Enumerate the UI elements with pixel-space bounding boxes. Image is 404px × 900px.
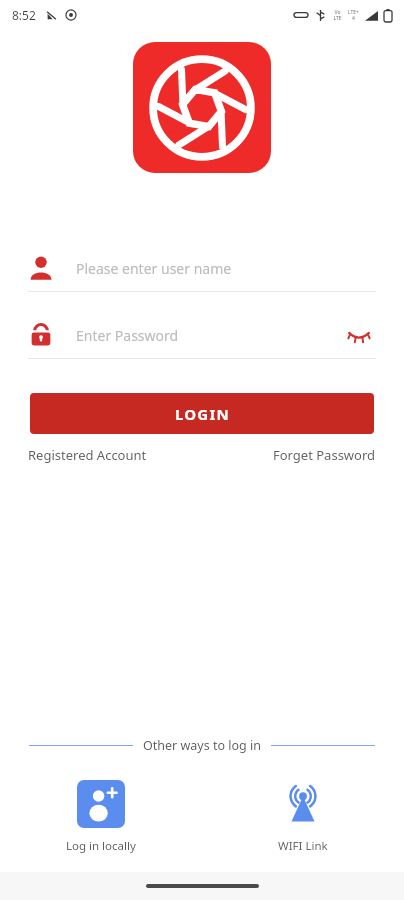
staticText: LTE+ 4 (348, 9, 359, 22)
button[interactable]: App logo (133, 42, 271, 173)
staticText: 8:52 (12, 7, 36, 23)
staticText: LOGIN (175, 404, 230, 424)
staticText: Please enter user name (76, 259, 376, 278)
staticText: Log in locally (66, 838, 136, 854)
staticText: Enter Password (76, 326, 342, 345)
other: Log in locally (77, 780, 125, 828)
button[interactable]: LOGIN (30, 393, 374, 434)
staticText: Vo LTE (333, 9, 342, 22)
button[interactable]: Forget Password (273, 446, 376, 464)
button[interactable]: Log in locally (62, 776, 140, 858)
staticText: WIFI Link (278, 838, 328, 854)
staticText: Registered Account (28, 446, 147, 464)
staticText: Forget Password (273, 446, 376, 464)
button[interactable]: Show password (342, 318, 376, 352)
button[interactable]: User name (28, 245, 376, 292)
other: WIFI Link (279, 780, 327, 828)
button[interactable]: Registered Account (28, 446, 147, 464)
button[interactable]: Password (28, 312, 376, 359)
button[interactable]: WIFI Link (274, 776, 332, 858)
staticText: Other ways to log in (143, 737, 261, 754)
